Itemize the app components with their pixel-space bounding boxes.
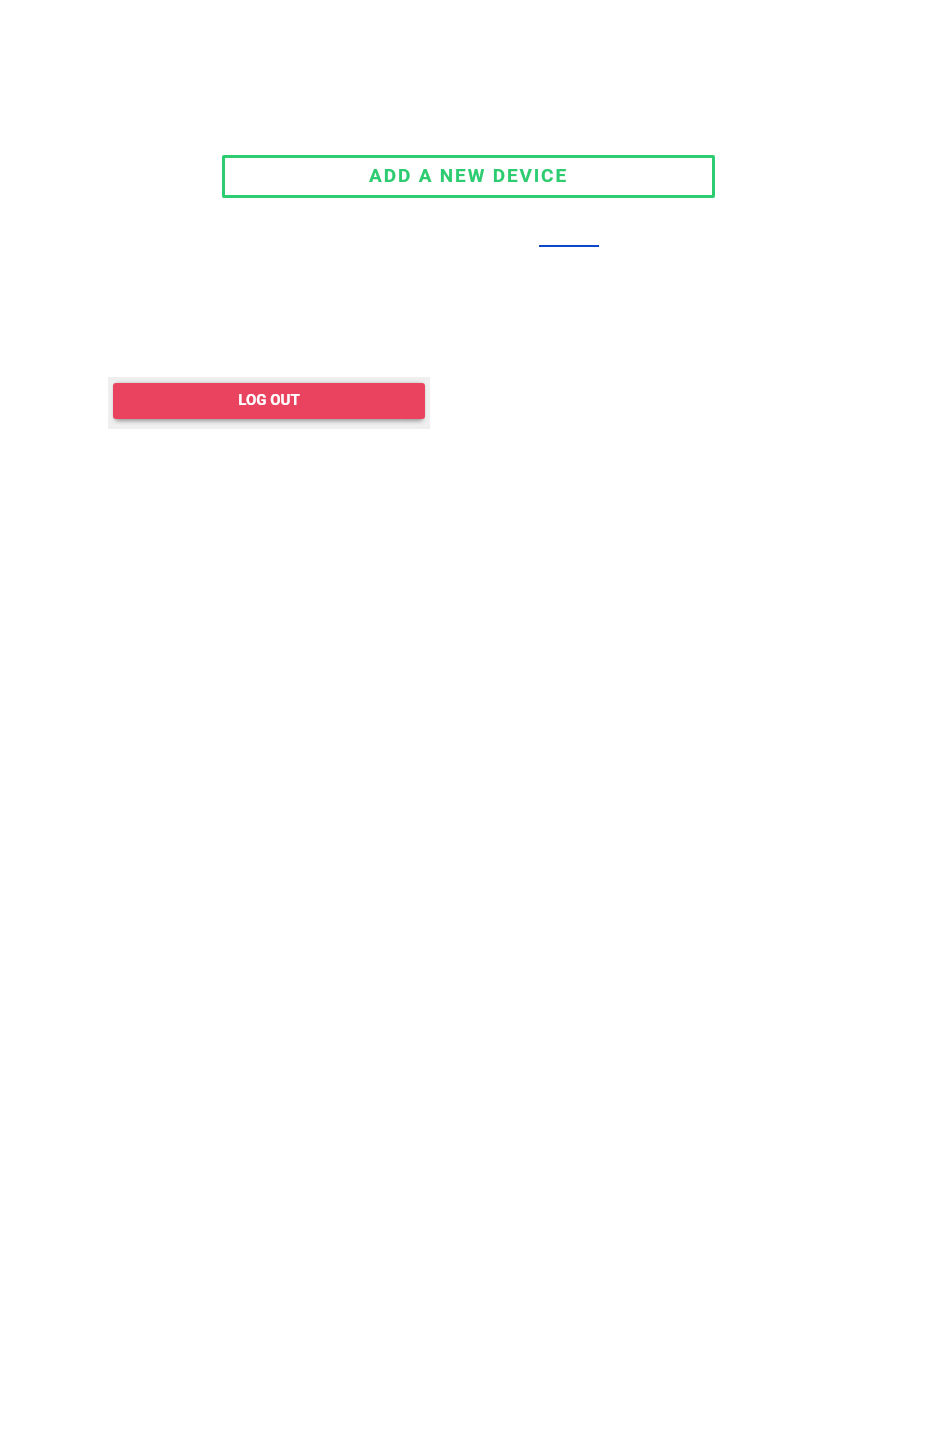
button[interactable]: ADD A NEW DEVICE [222, 155, 715, 198]
button[interactable]: LOG OUT [108, 377, 430, 429]
staticText: LOG OUT [238, 391, 300, 409]
staticText: ADD A NEW DEVICE [369, 164, 568, 186]
